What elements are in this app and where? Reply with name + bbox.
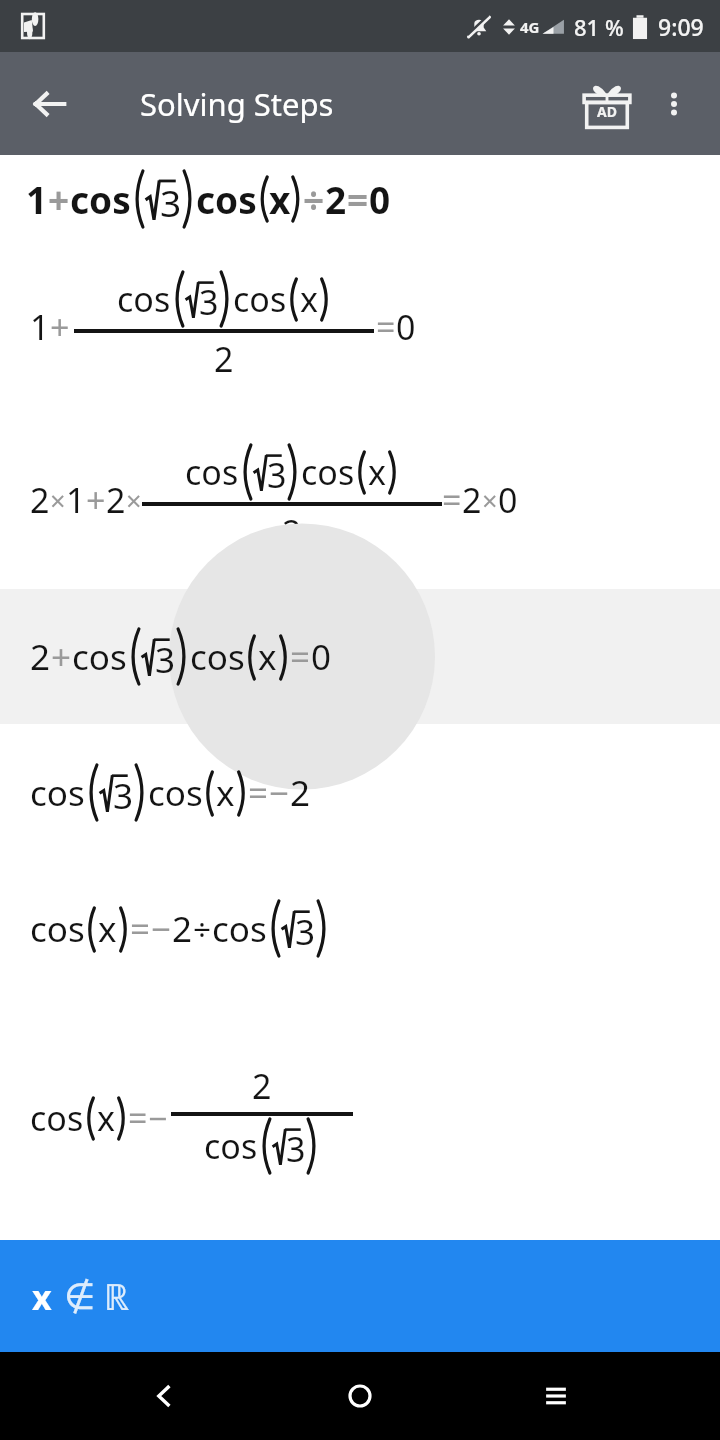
staticText: x (368, 449, 386, 495)
staticText: cos (190, 633, 245, 681)
staticText: 0 (311, 633, 332, 681)
button[interactable]: 2 (0, 411, 720, 589)
staticText: + (50, 304, 70, 350)
staticText: 1 (30, 304, 50, 350)
staticText: 2 (282, 509, 302, 555)
button[interactable]: x (0, 1240, 720, 1352)
staticText: 2 (290, 769, 311, 817)
staticText: 2 (30, 477, 50, 523)
button[interactable]: 2 (0, 589, 720, 724)
staticText: + (51, 633, 72, 681)
staticText: ∉ (64, 1276, 96, 1318)
button[interactable]: More options (642, 72, 706, 136)
button[interactable]: Back (132, 1364, 196, 1428)
staticText: AD (597, 102, 617, 121)
staticText: 4G (520, 17, 540, 37)
staticText: 0 (498, 477, 518, 523)
staticText: 2 (325, 174, 347, 224)
button[interactable]: cos (0, 860, 720, 996)
staticText: × (50, 482, 66, 519)
staticText: 3 (267, 452, 287, 491)
staticText: x (269, 174, 291, 224)
staticText: ℝ (104, 1272, 130, 1321)
staticText: ÷ (193, 907, 212, 950)
staticText: = (290, 633, 311, 681)
staticText: x (300, 276, 318, 322)
staticText: cos (301, 449, 355, 495)
staticText: 81 % (574, 12, 624, 42)
staticText: = (248, 769, 269, 817)
staticText: 2 (30, 633, 51, 681)
staticText: cos (70, 174, 131, 224)
staticText: 0 (369, 174, 391, 224)
staticText: x (258, 633, 277, 681)
staticText: x (216, 769, 235, 817)
staticText: x (98, 905, 117, 953)
staticText: Solving Steps (140, 83, 334, 125)
staticText: 3 (160, 177, 182, 220)
staticText: 0 (396, 304, 416, 350)
staticText: + (48, 174, 70, 224)
staticText: 9:09 (658, 11, 704, 42)
staticText: cos (196, 174, 257, 224)
staticText: cos (30, 905, 85, 953)
staticText: 2 (214, 336, 234, 382)
staticText: 3 (295, 908, 316, 948)
staticText: × (482, 482, 498, 519)
staticText: cos (72, 633, 127, 681)
button[interactable]: 1 (0, 155, 720, 243)
staticText: x (32, 1274, 52, 1320)
staticText: cos (117, 276, 171, 322)
staticText: × (126, 482, 142, 519)
staticText: cos (30, 769, 85, 817)
button[interactable]: Watch ad (572, 69, 642, 139)
staticText: 3 (199, 279, 219, 318)
staticText: 3 (286, 1126, 306, 1165)
staticText: 1 (66, 477, 86, 523)
staticText: − (148, 1095, 168, 1141)
staticText: = (347, 174, 369, 224)
staticText: cos (30, 1095, 84, 1141)
staticText: cos (185, 449, 239, 495)
button[interactable]: Back (24, 78, 76, 130)
staticText: 2 (172, 905, 193, 953)
staticText: cos (233, 276, 287, 322)
staticText: = (442, 477, 462, 523)
staticText: − (151, 905, 172, 953)
staticText: 2 (106, 477, 126, 523)
staticText: x (97, 1095, 115, 1141)
button[interactable]: 1 (0, 243, 720, 411)
staticText: 2 (252, 1063, 272, 1109)
staticText: + (86, 477, 106, 523)
staticText: 3 (155, 636, 176, 676)
button[interactable]: Home (328, 1364, 392, 1428)
staticText: = (130, 905, 151, 953)
staticText: 2 (462, 477, 482, 523)
staticText: = (376, 304, 396, 350)
staticText: ÷ (303, 174, 325, 224)
button[interactable]: cos (0, 996, 720, 1240)
staticText: 1 (26, 174, 48, 224)
button[interactable]: cos (0, 724, 720, 860)
staticText: = (128, 1095, 148, 1141)
staticText: cos (148, 769, 203, 817)
button[interactable]: Recent apps (524, 1364, 588, 1428)
staticText: − (269, 769, 290, 817)
staticText: 3 (113, 772, 134, 812)
staticText: cos (212, 905, 267, 953)
staticText: cos (204, 1123, 258, 1169)
